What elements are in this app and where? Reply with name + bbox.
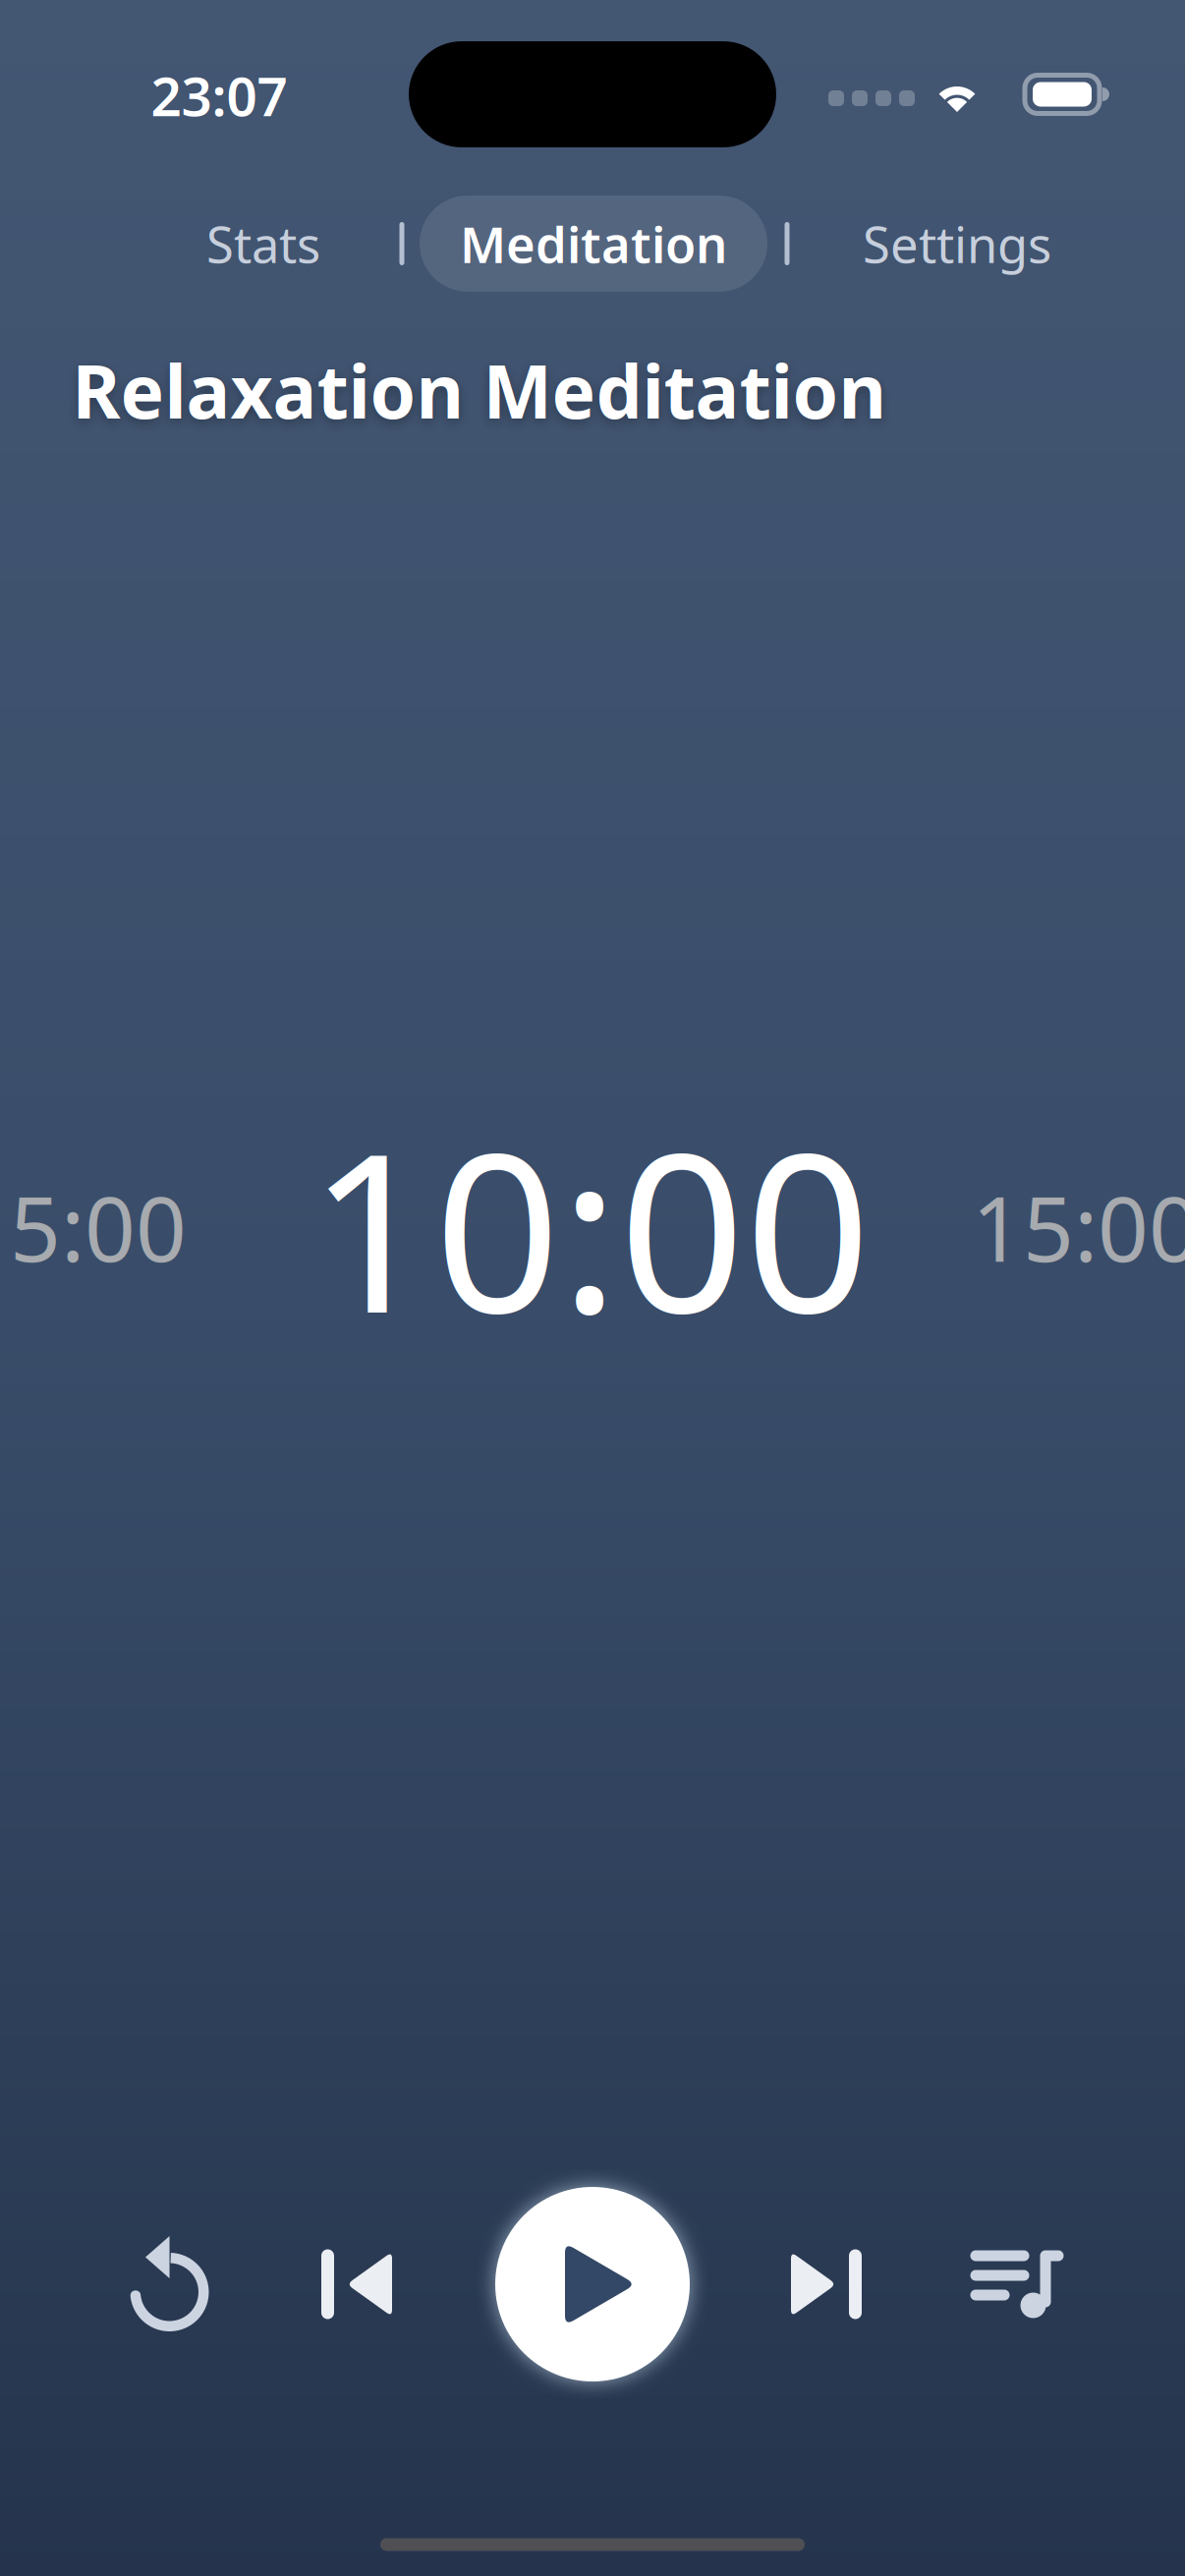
button[interactable]: Meditation <box>420 196 767 292</box>
staticText: Stats <box>206 211 320 277</box>
button[interactable]: Previous track <box>274 2187 439 2381</box>
staticText: Meditation <box>460 211 727 277</box>
staticText: Settings <box>863 211 1051 277</box>
staticText: 5:00 <box>10 1168 187 1286</box>
button[interactable]: Play <box>495 2187 690 2381</box>
button[interactable]: Settings <box>854 196 1060 292</box>
staticText: 15:00 <box>972 1168 1185 1286</box>
button[interactable]: Next track <box>744 2187 909 2381</box>
button[interactable]: Stats <box>180 196 347 292</box>
staticText: 10:00 <box>309 1081 871 1373</box>
button[interactable]: Playlist <box>934 2187 1100 2381</box>
button[interactable]: Restart <box>87 2187 253 2381</box>
staticText: Relaxation Meditation <box>72 341 887 439</box>
staticText: 23:07 <box>151 60 287 131</box>
